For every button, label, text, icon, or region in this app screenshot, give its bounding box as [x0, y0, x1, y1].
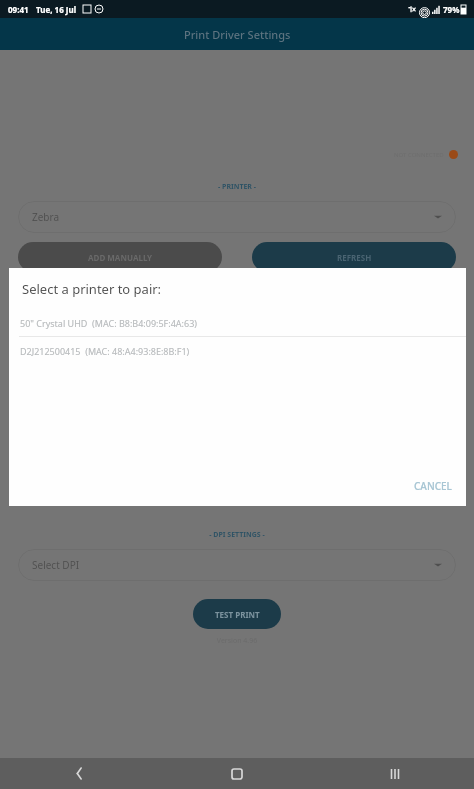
button[interactable]: D2J212500415 (MAC: 48:A4:93:8E:8B:F1) — [9, 337, 466, 364]
button[interactable]: Back — [0, 758, 158, 789]
button[interactable]: REFRESH — [252, 242, 456, 272]
staticText: - DPI SETTINGS - — [0, 530, 474, 540]
button[interactable]: Select DPI — [18, 549, 456, 581]
staticText: REFRESH — [337, 252, 372, 263]
button[interactable]: TEST PRINT — [193, 599, 281, 629]
staticText: - PRINTER - — [0, 182, 474, 192]
button[interactable]: Home — [158, 758, 316, 789]
staticText: ADD MANUALLY — [88, 252, 153, 263]
staticText: Select a printer to pair: — [22, 280, 162, 298]
button[interactable]: 50" Crystal UHD (MAC: B8:B4:09:5F:4A:63) — [9, 309, 466, 336]
staticText: 79% — [443, 4, 460, 15]
staticText: 9 — [377, 484, 417, 496]
staticText: Tue, 16 Jul — [36, 4, 77, 15]
staticText: D2J212500415 (MAC: 48:A4:93:8E:8B:F1) — [20, 345, 190, 357]
staticText: 10 — [417, 484, 457, 496]
button[interactable]: CANCEL — [400, 471, 466, 501]
staticText: TEST PRINT — [215, 609, 260, 620]
button[interactable]: Recents — [316, 758, 474, 789]
staticText: 50" Crystal UHD (MAC: B8:B4:09:5F:4A:63) — [20, 317, 198, 329]
staticText: Select DPI — [32, 558, 80, 572]
staticText: CANCEL — [414, 479, 452, 493]
button[interactable]: ADD MANUALLY — [18, 242, 222, 272]
staticText: Zebra — [32, 210, 60, 224]
staticText: 09:41 — [8, 4, 29, 15]
staticText: Print Driver Settings — [184, 27, 291, 42]
